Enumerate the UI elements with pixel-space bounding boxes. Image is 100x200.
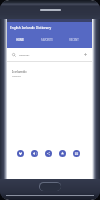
button[interactable]: HOME xyxy=(7,34,33,48)
button[interactable]: Keyboard xyxy=(73,150,80,157)
button[interactable]: Share xyxy=(45,150,52,157)
staticText: HOME xyxy=(16,38,24,42)
staticText: RECENT xyxy=(69,38,79,42)
staticText: Icelandic xyxy=(19,53,30,56)
staticText: FAVORITE xyxy=(41,38,53,42)
staticText: English Icelandic Dictionary xyxy=(10,26,52,30)
button[interactable]: Clear xyxy=(83,52,88,57)
button[interactable]: RECENT xyxy=(60,34,87,48)
button[interactable]: FAVORITE xyxy=(33,34,60,48)
button[interactable]: Favorite xyxy=(17,150,24,157)
staticText: Íslenska xyxy=(12,75,21,78)
button[interactable]: Sound xyxy=(31,150,38,157)
staticText: Icelandic xyxy=(12,69,27,74)
button[interactable]: Star xyxy=(59,150,66,157)
